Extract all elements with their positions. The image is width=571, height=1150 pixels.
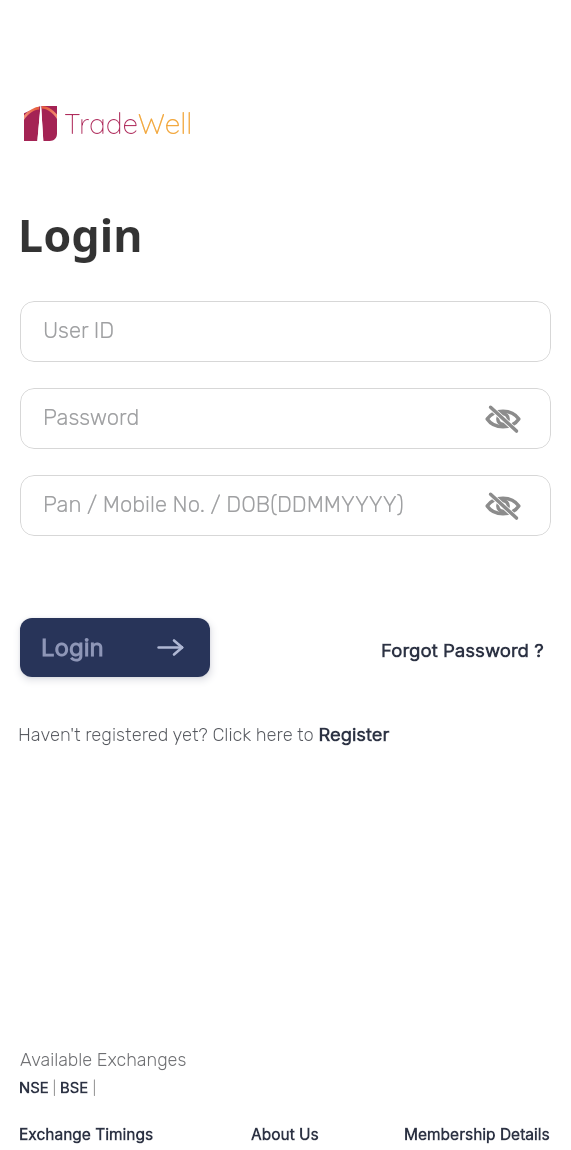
button[interactable]: Show PAN / DOB — [483, 486, 523, 526]
staticText: Pan / Mobile No. / DOB(DDMMYYYY) — [43, 491, 404, 517]
staticText: NSE — [19, 1079, 49, 1097]
staticText: | — [89, 1079, 97, 1097]
staticText: | — [49, 1079, 60, 1097]
staticText: TradeWell — [64, 106, 193, 141]
staticText: About Us — [251, 1125, 319, 1144]
staticText: User ID — [43, 317, 115, 343]
button[interactable]: Forgot Password ? — [381, 639, 544, 662]
staticText: Login — [41, 633, 104, 662]
staticText: Password — [43, 404, 140, 430]
staticText: Forgot Password ? — [381, 639, 544, 662]
button[interactable]: Membership Details — [373, 1125, 550, 1144]
button[interactable]: Haven't registered yet? Click here to Re… — [18, 723, 390, 745]
button[interactable]: User ID — [20, 301, 551, 362]
staticText: Exchange Timings — [19, 1125, 154, 1144]
staticText: Login — [18, 204, 143, 265]
button[interactable]: About Us — [196, 1125, 373, 1144]
button[interactable]: Login — [20, 618, 210, 677]
button[interactable]: Pan / Mobile No. / DOB(DDMMYYYY) — [20, 475, 551, 536]
staticText: BSE — [60, 1079, 89, 1097]
staticText: Membership Details — [404, 1125, 550, 1144]
button[interactable]: Show password — [483, 399, 523, 439]
button[interactable]: Exchange Timings — [19, 1125, 196, 1144]
staticText: Available Exchanges — [20, 1049, 187, 1070]
button[interactable]: Password — [20, 388, 551, 449]
staticText: Haven't registered yet? Click here to Re… — [18, 723, 390, 745]
